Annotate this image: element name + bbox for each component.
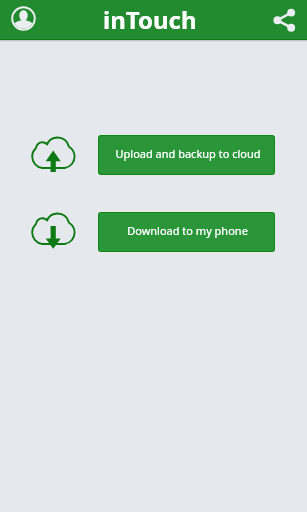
staticText: Download to my phone [127, 223, 248, 238]
button[interactable]: Upload and backup to cloud [98, 135, 275, 175]
button[interactable]: Share [273, 8, 296, 31]
button[interactable]: Profile [11, 6, 36, 31]
button[interactable]: Download to my phone [98, 212, 275, 252]
staticText: Upload and backup to cloud [115, 146, 261, 161]
staticText: inTouch [103, 3, 197, 36]
